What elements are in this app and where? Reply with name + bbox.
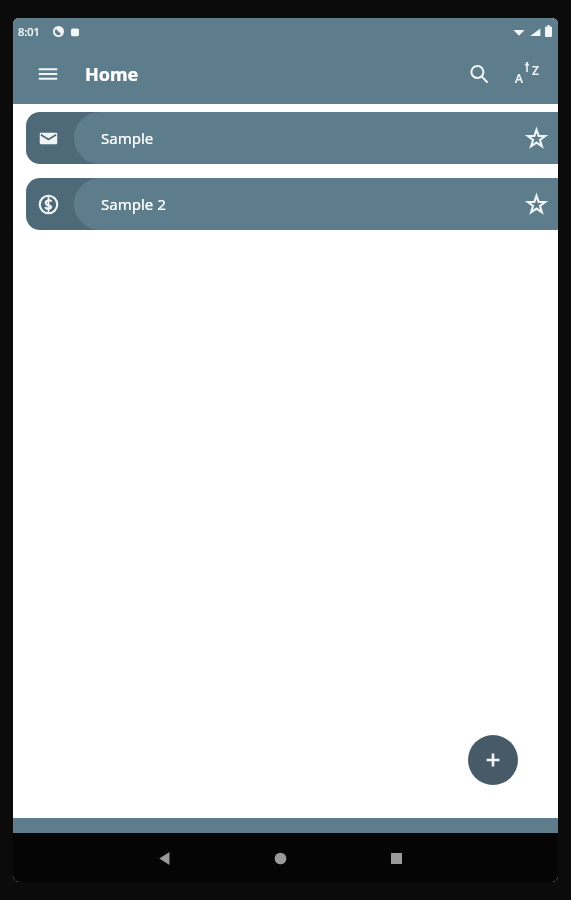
staticText: 8:01 bbox=[18, 24, 40, 39]
button[interactable]: Add bbox=[468, 735, 518, 785]
button[interactable]: Open navigation drawer bbox=[29, 55, 67, 93]
button[interactable]: Back bbox=[141, 835, 187, 881]
button[interactable]: Search bbox=[460, 55, 498, 93]
button[interactable]: Sort alphabetically bbox=[508, 55, 546, 93]
staticText: Z bbox=[532, 62, 539, 78]
button[interactable]: Favorite Sample bbox=[518, 120, 554, 156]
staticText: Sample 2 bbox=[101, 194, 166, 214]
button[interactable]: Favorite Sample 2 bbox=[518, 186, 554, 222]
button[interactable]: Home bbox=[257, 835, 303, 881]
button[interactable]: Sample 2 bbox=[26, 178, 558, 230]
button[interactable]: Recent apps bbox=[373, 835, 419, 881]
button[interactable]: Sample bbox=[26, 112, 558, 164]
staticText: Home bbox=[85, 62, 139, 87]
staticText: A bbox=[515, 70, 523, 86]
staticText: Sample bbox=[101, 128, 154, 148]
